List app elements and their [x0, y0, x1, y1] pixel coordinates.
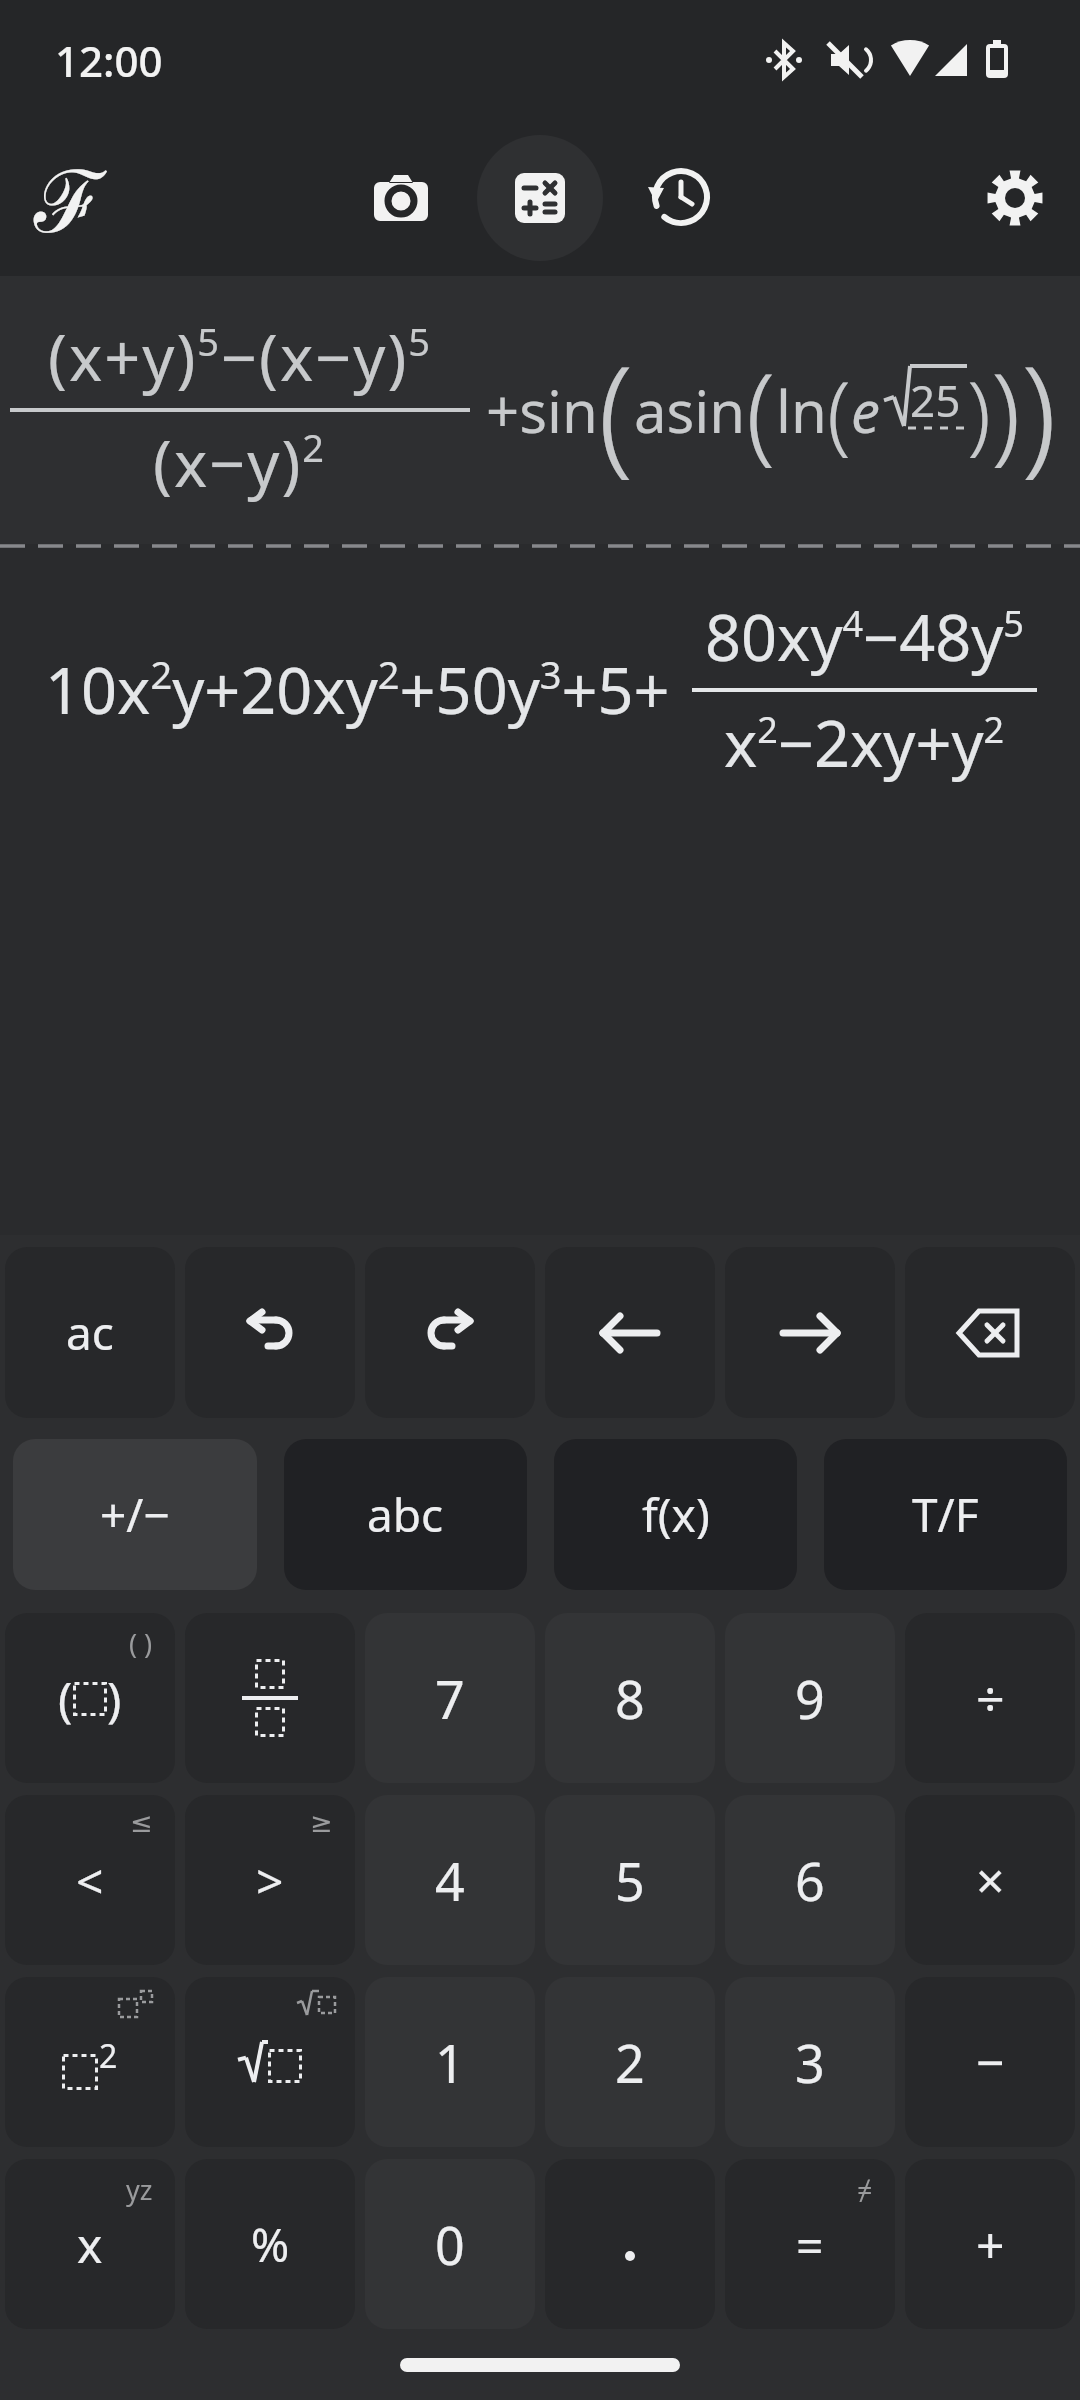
button[interactable]: %: [185, 2159, 355, 2329]
staticText: 3: [795, 2027, 825, 2098]
button[interactable]: 8: [545, 1613, 715, 1783]
staticText: ): [1021, 323, 1057, 497]
button[interactable]: 3: [725, 1977, 895, 2147]
button[interactable]: 4: [365, 1795, 535, 1965]
staticText: =: [796, 2212, 824, 2277]
button[interactable]: [545, 2159, 715, 2329]
button[interactable]: 5: [545, 1795, 715, 1965]
button[interactable]: [185, 1613, 355, 1783]
button[interactable]: [545, 1247, 715, 1418]
staticText: 10x2y+20xy2+50y3+5+: [45, 647, 670, 733]
button[interactable]: ≤: [5, 1795, 175, 1965]
button[interactable]: [185, 1977, 355, 2147]
staticText: +/−: [100, 1483, 170, 1546]
staticText: %: [251, 2213, 290, 2276]
staticText: >: [256, 1848, 284, 1913]
button[interactable]: yz: [5, 2159, 175, 2329]
staticText: ): [991, 338, 1021, 482]
button[interactable]: [725, 1247, 895, 1418]
staticText: ≤: [130, 1807, 153, 1838]
button[interactable]: [648, 167, 710, 229]
button[interactable]: 7: [365, 1613, 535, 1783]
staticText: ×: [976, 1846, 1005, 1914]
button[interactable]: [365, 1247, 535, 1418]
staticText: +sin: [486, 371, 598, 450]
button[interactable]: 1: [365, 1977, 535, 2147]
staticText: (: [598, 323, 634, 497]
staticText: (: [827, 352, 851, 469]
staticText: ): [107, 1666, 122, 1731]
button[interactable]: ≠: [725, 2159, 895, 2329]
button[interactable]: ac: [5, 1247, 175, 1418]
staticText: (: [58, 1666, 73, 1731]
button[interactable]: [477, 135, 603, 261]
button[interactable]: +: [905, 2159, 1075, 2329]
staticText: e: [851, 371, 880, 450]
staticText: T/F: [912, 1483, 979, 1546]
staticText: x2−2xy+y2: [724, 700, 1005, 786]
button[interactable]: [374, 175, 428, 221]
staticText: (: [746, 338, 776, 482]
staticText: 1: [435, 2027, 465, 2098]
button[interactable]: T/F: [824, 1439, 1067, 1590]
staticText: asin: [634, 371, 746, 450]
button[interactable]: [905, 1247, 1075, 1418]
staticText: yz: [126, 2171, 153, 2208]
button[interactable]: f(x): [554, 1439, 797, 1590]
staticText: ≠: [857, 2171, 873, 2208]
staticText: ÷: [976, 1664, 1005, 1732]
staticText: ln: [776, 371, 827, 450]
staticText: 25: [910, 370, 961, 430]
button[interactable]: [986, 169, 1044, 227]
button[interactable]: 6: [725, 1795, 895, 1965]
button[interactable]: 2: [5, 1977, 175, 2147]
button[interactable]: ℱ: [34, 140, 105, 257]
button[interactable]: [185, 1247, 355, 1418]
staticText: abc: [367, 1483, 444, 1546]
staticText: −: [976, 2028, 1005, 2096]
staticText: x: [77, 2212, 103, 2277]
staticText: ( ): [129, 1625, 153, 1662]
staticText: ): [967, 352, 991, 469]
staticText: +: [976, 2210, 1005, 2278]
staticText: 5: [615, 1845, 645, 1916]
button[interactable]: ≥: [185, 1795, 355, 1965]
staticText: 7: [435, 1663, 465, 1734]
staticText: ℱ: [34, 140, 105, 257]
button[interactable]: ( ): [5, 1613, 175, 1783]
button[interactable]: 0: [365, 2159, 535, 2329]
staticText: 2: [615, 2027, 645, 2098]
button[interactable]: +/−: [13, 1439, 257, 1590]
button[interactable]: ×: [905, 1795, 1075, 1965]
staticText: <: [76, 1848, 104, 1913]
staticText: 4: [435, 1845, 465, 1916]
staticText: ≥: [310, 1807, 333, 1838]
staticText: 2: [99, 2034, 118, 2078]
staticText: (x+y)5−(x−y)5: [48, 314, 433, 400]
staticText: 6: [795, 1845, 825, 1916]
staticText: (x−y)2: [153, 420, 327, 506]
staticText: 0: [435, 2209, 465, 2280]
button[interactable]: ÷: [905, 1613, 1075, 1783]
button[interactable]: 2: [545, 1977, 715, 2147]
button[interactable]: −: [905, 1977, 1075, 2147]
staticText: 80xy4−48y5: [705, 594, 1024, 680]
button[interactable]: 9: [725, 1613, 895, 1783]
staticText: f(x): [642, 1483, 710, 1546]
staticText: 9: [795, 1663, 825, 1734]
staticText: 12:00: [55, 32, 163, 89]
button[interactable]: abc: [284, 1439, 527, 1590]
staticText: ac: [66, 1301, 114, 1364]
staticText: 8: [615, 1663, 645, 1734]
